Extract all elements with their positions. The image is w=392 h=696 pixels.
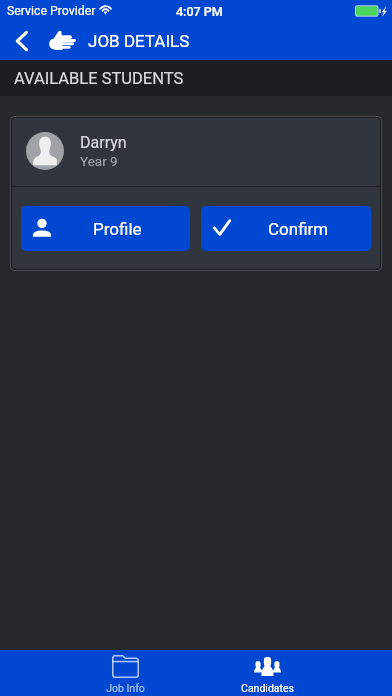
staticText: Darryn (80, 133, 127, 152)
staticText: Profile (93, 219, 142, 239)
staticText: JOB DETAILS (88, 31, 190, 51)
button[interactable]: Job Info (54, 650, 196, 696)
button[interactable]: Profile (21, 206, 190, 251)
button[interactable]: Back (0, 22, 40, 60)
staticText: Candidates (241, 682, 294, 694)
staticText: Job Info (106, 682, 145, 694)
button[interactable]: Candidates (196, 650, 338, 696)
staticText: AVAILABLE STUDENTS (14, 69, 184, 88)
button[interactable]: Confirm (201, 206, 371, 251)
staticText: 4:07 PM (176, 4, 223, 19)
staticText: Service Provider (7, 4, 96, 18)
staticText: Confirm (268, 219, 329, 239)
button[interactable]: Darryn (12, 118, 380, 186)
staticText: Year 9 (80, 153, 118, 169)
